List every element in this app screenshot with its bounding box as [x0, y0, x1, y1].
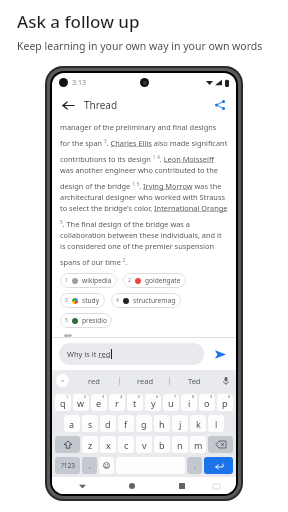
- button[interactable]: .: [187, 457, 202, 474]
- staticText: l: [215, 418, 218, 430]
- staticText: y: [151, 397, 156, 409]
- button[interactable]: More suggestions: [56, 374, 69, 387]
- staticText: 5: [65, 317, 68, 324]
- staticText: 1: [66, 394, 69, 399]
- staticText: 3: [102, 394, 105, 399]
- staticText: t: [133, 397, 137, 409]
- button[interactable]: Send: [211, 345, 229, 363]
- button[interactable]: ,: [82, 457, 97, 474]
- button[interactable]: k: [190, 415, 206, 432]
- button[interactable]: read: [120, 376, 169, 386]
- button[interactable]: p: [217, 394, 233, 411]
- staticText: structuremag: [133, 296, 176, 305]
- staticText: Ted: [188, 376, 201, 386]
- staticText: .: [194, 461, 196, 471]
- staticText: j: [179, 418, 182, 430]
- button[interactable]: x: [100, 436, 116, 453]
- staticText: ,: [89, 461, 91, 471]
- button[interactable]: Home: [125, 479, 139, 493]
- button[interactable]: 1: [60, 273, 117, 288]
- staticText: Keep learning in your own way in your ow…: [17, 39, 263, 53]
- button[interactable]: b: [154, 436, 170, 453]
- button[interactable]: ?123: [55, 457, 80, 474]
- button[interactable]: j: [172, 415, 188, 432]
- staticText: f: [124, 418, 128, 430]
- button[interactable]: w: [73, 394, 89, 411]
- staticText: w: [77, 397, 85, 409]
- button[interactable]: Back: [75, 479, 89, 493]
- button[interactable]: o: [199, 394, 215, 411]
- button[interactable]: f: [118, 415, 134, 432]
- staticText: 5: [138, 394, 141, 399]
- button[interactable]: n: [172, 436, 188, 453]
- button[interactable]: Ted: [170, 376, 219, 386]
- staticText: q: [60, 397, 66, 409]
- staticText: d: [105, 418, 111, 430]
- staticText: e: [96, 397, 102, 409]
- button[interactable]: Emoji: [99, 457, 114, 474]
- button[interactable]: l: [208, 415, 224, 432]
- button[interactable]: Report: [61, 335, 74, 337]
- staticText: 0: [228, 394, 231, 399]
- staticText: goldengate: [145, 276, 181, 285]
- staticText: Thread: [84, 98, 118, 112]
- button[interactable]: Recents: [175, 479, 189, 493]
- button[interactable]: Voice input: [219, 374, 232, 387]
- button[interactable]: e: [91, 394, 107, 411]
- staticText: h: [159, 418, 165, 430]
- button[interactable]: a: [64, 415, 80, 432]
- button[interactable]: 5: [60, 313, 112, 328]
- staticText: red: [88, 376, 100, 386]
- staticText: 4: [120, 394, 123, 399]
- button[interactable]: Shift: [55, 436, 80, 453]
- staticText: c: [124, 439, 129, 451]
- button[interactable]: m: [190, 436, 206, 453]
- button[interactable]: v: [136, 436, 152, 453]
- staticText: u: [168, 397, 174, 409]
- staticText: 3:13: [72, 78, 86, 88]
- staticText: x: [106, 439, 111, 451]
- staticText: z: [88, 439, 93, 451]
- button[interactable]: y: [145, 394, 161, 411]
- button[interactable]: red: [69, 376, 119, 386]
- staticText: 9: [210, 394, 213, 399]
- button[interactable]: t: [127, 394, 143, 411]
- button[interactable]: z: [82, 436, 98, 453]
- button[interactable]: g: [136, 415, 152, 432]
- button[interactable]: u: [163, 394, 179, 411]
- button[interactable]: Enter: [204, 457, 233, 474]
- button[interactable]: d: [100, 415, 116, 432]
- button[interactable]: q: [55, 394, 71, 411]
- staticText: a: [69, 418, 75, 430]
- button[interactable]: i: [181, 394, 197, 411]
- button[interactable]: Back: [60, 97, 76, 113]
- button[interactable]: 3: [60, 293, 105, 308]
- button[interactable]: Switch keyboard: [209, 479, 223, 493]
- staticText: b: [159, 439, 165, 451]
- staticText: k: [196, 418, 201, 430]
- button[interactable]: s: [82, 415, 98, 432]
- button[interactable]: c: [118, 436, 134, 453]
- staticText: 2: [84, 394, 87, 399]
- button[interactable]: 4: [111, 293, 181, 308]
- staticText: wikipedia: [82, 276, 112, 285]
- staticText: study: [82, 296, 100, 305]
- button[interactable]: Share: [212, 97, 228, 113]
- button[interactable]: Backspace: [208, 436, 233, 453]
- staticText: Ask a follow up: [17, 10, 140, 33]
- staticText: 2: [128, 277, 131, 284]
- staticText: o: [204, 397, 210, 409]
- staticText: 8: [192, 394, 195, 399]
- button[interactable]: r: [109, 394, 125, 411]
- staticText: 7: [174, 394, 177, 399]
- staticText: i: [188, 397, 191, 409]
- staticText: g: [141, 418, 147, 430]
- staticText: s: [88, 418, 93, 430]
- staticText: r: [115, 397, 119, 409]
- button[interactable]: 2: [123, 273, 186, 288]
- button[interactable]: Why is it red: [59, 343, 204, 365]
- staticText: 6: [156, 394, 159, 399]
- button[interactable]: h: [154, 415, 170, 432]
